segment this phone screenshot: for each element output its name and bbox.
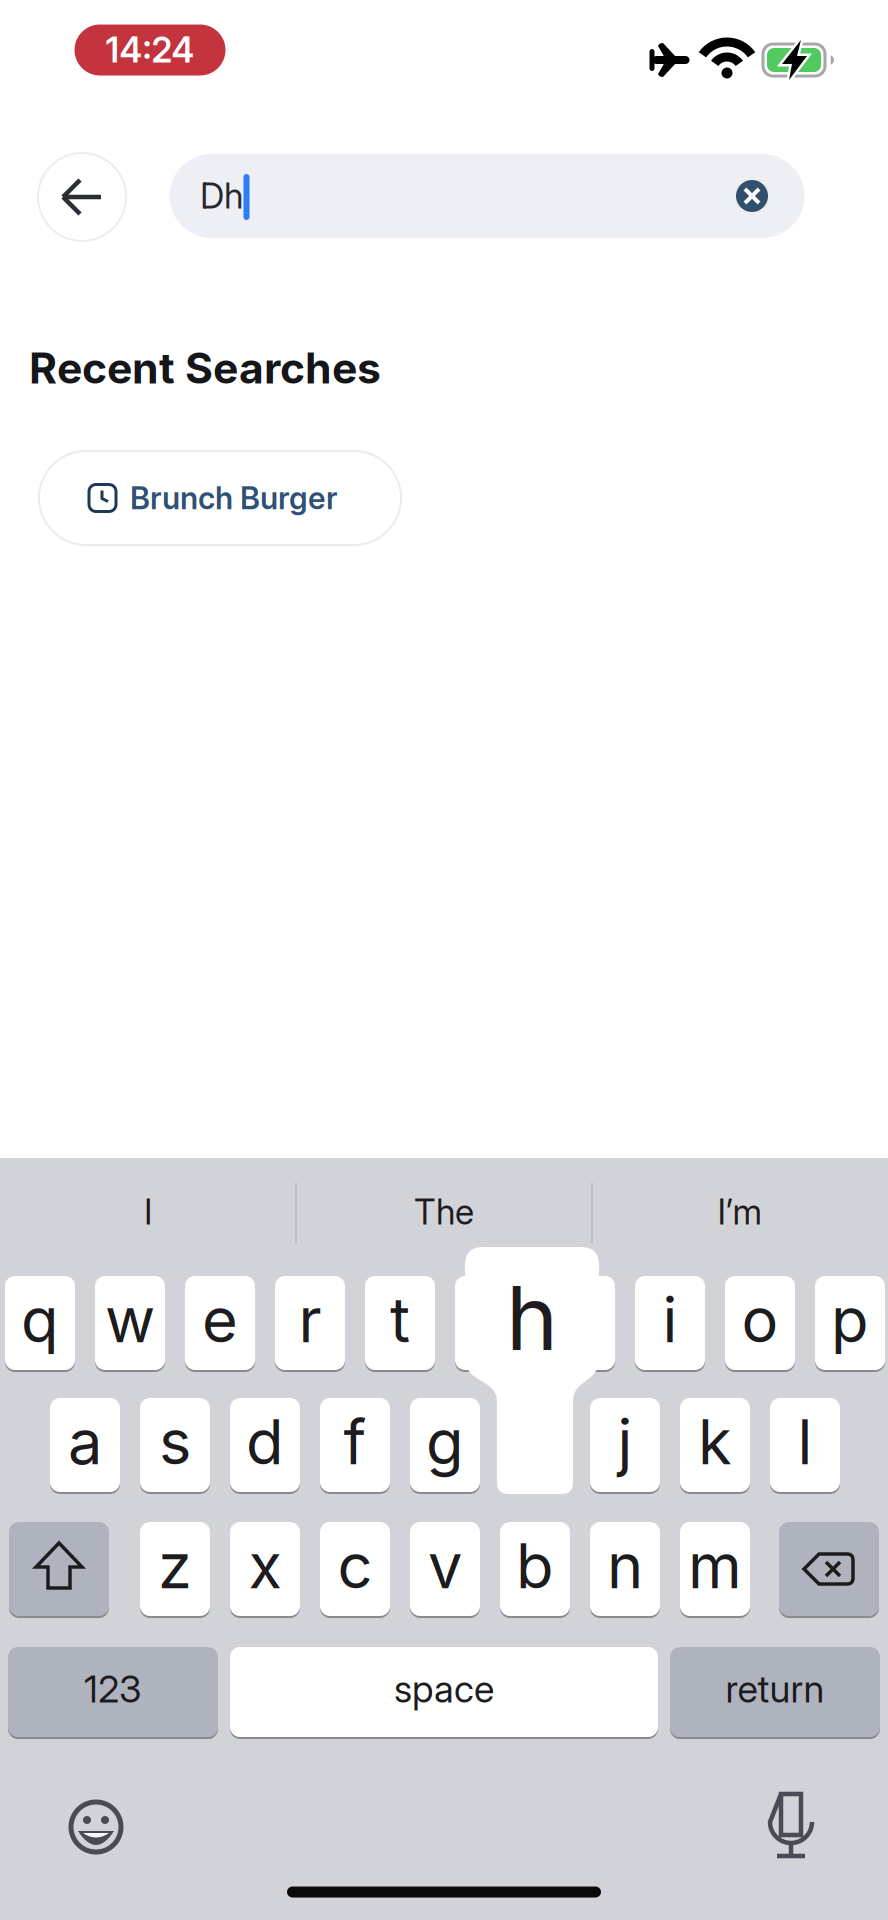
staticText: i — [662, 1284, 677, 1356]
button[interactable]: l — [770, 1398, 840, 1492]
staticText: m — [688, 1530, 742, 1602]
button[interactable]: f — [320, 1398, 390, 1492]
button[interactable] — [759, 1790, 823, 1862]
staticText: h — [506, 1266, 558, 1370]
staticText: I’m — [717, 1192, 762, 1232]
staticText: g — [426, 1406, 464, 1478]
staticText: n — [607, 1530, 643, 1602]
staticText: v — [428, 1530, 462, 1602]
button[interactable]: x — [230, 1522, 300, 1616]
staticText: Dh — [200, 176, 243, 216]
staticText: b — [516, 1530, 554, 1602]
button[interactable]: w — [95, 1276, 165, 1370]
staticText: x — [248, 1530, 281, 1602]
staticText: d — [246, 1406, 284, 1478]
button[interactable]: o — [725, 1276, 795, 1370]
staticText: s — [159, 1406, 191, 1478]
staticText: 14:24 — [105, 30, 194, 70]
button[interactable]: k — [680, 1398, 750, 1492]
button[interactable] — [38, 153, 126, 241]
staticText: f — [343, 1406, 366, 1478]
button[interactable]: space — [230, 1647, 658, 1737]
staticText: I — [144, 1192, 152, 1232]
staticText: p — [831, 1284, 869, 1356]
staticText: q — [21, 1284, 59, 1356]
button[interactable]: q — [5, 1276, 75, 1370]
button[interactable] — [64, 1795, 128, 1859]
button[interactable] — [545, 1276, 615, 1370]
button[interactable]: Brunch Burger — [39, 451, 401, 545]
staticText: space — [394, 1667, 494, 1711]
button[interactable]: s — [140, 1398, 210, 1492]
button[interactable]: i — [635, 1276, 705, 1370]
button[interactable]: t — [365, 1276, 435, 1370]
button[interactable] — [455, 1276, 525, 1370]
staticText: c — [337, 1530, 372, 1602]
button[interactable]: I — [8, 1172, 288, 1252]
button[interactable]: a — [50, 1398, 120, 1492]
button[interactable] — [9, 1522, 109, 1616]
button[interactable]: p — [815, 1276, 885, 1370]
staticText: o — [741, 1284, 778, 1356]
staticText: Brunch Burger — [130, 480, 338, 516]
staticText: k — [698, 1406, 732, 1478]
staticText: l — [797, 1406, 812, 1478]
staticText: r — [298, 1284, 321, 1356]
staticText: w — [105, 1284, 155, 1356]
button[interactable]: z — [140, 1522, 210, 1616]
button[interactable]: b — [500, 1522, 570, 1616]
button[interactable]: return — [670, 1647, 880, 1737]
staticText: t — [390, 1284, 410, 1356]
button[interactable]: I’m — [600, 1172, 880, 1252]
staticText: j — [617, 1406, 632, 1478]
button[interactable]: The — [304, 1172, 584, 1252]
button[interactable]: m — [680, 1522, 750, 1616]
button[interactable]: n — [590, 1522, 660, 1616]
button[interactable]: d — [230, 1398, 300, 1492]
button[interactable]: c — [320, 1522, 390, 1616]
staticText: e — [202, 1284, 238, 1356]
button[interactable]: e — [185, 1276, 255, 1370]
button[interactable] — [736, 180, 768, 212]
button[interactable]: 14:24 — [74, 24, 225, 75]
button[interactable]: v — [410, 1522, 480, 1616]
button[interactable]: r — [275, 1276, 345, 1370]
button[interactable]: j — [590, 1398, 660, 1492]
staticText: The — [414, 1192, 474, 1232]
staticText: return — [725, 1667, 824, 1711]
button[interactable]: Dh — [169, 154, 804, 238]
button[interactable] — [779, 1522, 879, 1616]
staticText: a — [68, 1406, 102, 1478]
staticText: z — [158, 1530, 192, 1602]
button[interactable]: 123 — [8, 1647, 218, 1737]
staticText: Recent Searches — [29, 343, 381, 393]
staticText: 123 — [84, 1667, 142, 1711]
button[interactable]: g — [410, 1398, 480, 1492]
